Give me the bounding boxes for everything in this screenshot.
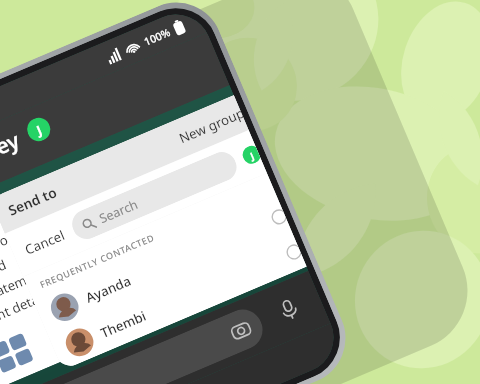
staticText: FREQUENTLY CONTACTED (38, 231, 157, 291)
other: Forward (95, 274, 116, 295)
button[interactable]: Forward (75, 232, 194, 313)
button[interactable]: Banca Money (0, 38, 212, 214)
button[interactable]: Search (68, 147, 241, 244)
staticText: J (33, 121, 44, 138)
staticText: Buy Airtime/Electricity/Data (0, 173, 90, 257)
button[interactable]: Voice message (263, 283, 316, 336)
staticText: Buy a card (0, 255, 9, 298)
other: Verified account (23, 114, 54, 145)
staticText: J (248, 149, 256, 162)
staticText: Product information (0, 211, 56, 277)
staticText: 100% (141, 24, 173, 49)
button[interactable]: Thembi (48, 232, 307, 370)
staticText: Cancel (22, 226, 67, 259)
staticText: Thembi (98, 306, 150, 342)
button[interactable]: New group (176, 105, 245, 147)
staticText: Search (96, 195, 140, 227)
other: Camera (229, 319, 253, 343)
staticText: New group (176, 105, 245, 147)
button[interactable]: Buy Airtime/Electricity/Data (0, 129, 227, 384)
staticText: Banca Money (0, 125, 24, 206)
button[interactable]: Emoji (0, 303, 269, 384)
staticText: Ayanda (83, 272, 134, 307)
button[interactable]: Cancel (22, 226, 67, 259)
other: Search (81, 216, 96, 232)
button[interactable]: Selected (240, 144, 261, 167)
staticText: Account details (0, 285, 54, 339)
staticText: Send to (5, 182, 59, 220)
staticText: Bank statements (0, 261, 54, 318)
button[interactable]: Ayanda (33, 196, 292, 335)
staticText: Forward (119, 249, 175, 286)
